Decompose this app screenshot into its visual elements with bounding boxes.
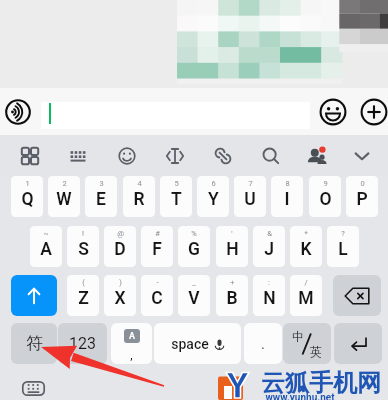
button[interactable]: space <box>154 323 241 364</box>
staticText: : <box>268 278 270 287</box>
button[interactable]: 1 <box>11 176 43 217</box>
staticText: U <box>244 189 256 210</box>
button[interactable]: Emoji <box>313 88 353 135</box>
button[interactable]: 9 <box>309 176 341 217</box>
staticText: E <box>96 189 106 210</box>
button[interactable]: Link <box>201 135 245 176</box>
staticText: L <box>338 239 348 260</box>
button[interactable]: Apps <box>8 135 52 176</box>
staticText: 7 <box>248 179 253 188</box>
staticText: I <box>284 189 290 210</box>
button[interactable]: : <box>253 275 285 316</box>
button[interactable]: ( <box>67 275 99 316</box>
button[interactable]: + <box>216 275 248 316</box>
staticText: Z <box>78 288 89 309</box>
staticText: H <box>226 239 239 260</box>
button[interactable]: Search <box>249 135 293 176</box>
staticText: ) <box>119 278 122 287</box>
button[interactable]: 6 <box>197 176 229 217</box>
staticText: 3 <box>99 179 104 188</box>
button[interactable]: Shift <box>11 275 57 316</box>
button[interactable]: - <box>141 275 173 316</box>
button[interactable]: ) <box>104 275 136 316</box>
button[interactable]: Enter <box>334 323 382 364</box>
button[interactable]: ! <box>67 226 99 267</box>
button[interactable]: Stickers <box>105 135 149 176</box>
staticText: B <box>226 288 238 309</box>
button[interactable]: / <box>290 275 322 316</box>
staticText: % <box>191 229 197 238</box>
button[interactable]: Backspace <box>333 275 381 316</box>
button[interactable]: ' <box>216 226 248 267</box>
staticText: ! <box>82 229 84 238</box>
button[interactable]: 4 <box>123 176 155 217</box>
button[interactable]: _ <box>178 275 210 316</box>
staticText: ? <box>341 229 345 238</box>
staticText: 4 <box>137 179 142 188</box>
staticText: * <box>304 229 308 238</box>
button[interactable]: Chinese English toggle <box>283 323 331 364</box>
button[interactable]: Comma <box>111 323 152 364</box>
button[interactable]: 0 <box>346 176 378 217</box>
staticText: + <box>230 278 235 287</box>
button[interactable]: Keyboard <box>56 135 100 176</box>
staticText: K <box>300 239 312 260</box>
staticText: 符 <box>26 333 43 354</box>
button[interactable]: More functions <box>354 88 388 135</box>
staticText: P <box>356 189 368 210</box>
button[interactable]: ~ <box>30 226 62 267</box>
staticText: 中 <box>292 329 304 344</box>
staticText: space <box>171 336 209 352</box>
button[interactable]: 2 <box>48 176 80 217</box>
staticText: F <box>152 239 162 260</box>
button[interactable]: 7 <box>234 176 266 217</box>
staticText: C <box>151 288 163 309</box>
button[interactable]: & <box>253 226 285 267</box>
staticText: Y <box>208 189 219 210</box>
button[interactable]: Mention contact <box>294 135 338 176</box>
button[interactable]: Period <box>244 323 282 364</box>
staticText: ( <box>82 278 85 287</box>
staticText: / <box>304 278 308 287</box>
staticText: R <box>133 189 145 210</box>
staticText: ' <box>231 229 233 238</box>
staticText: W <box>56 189 72 210</box>
staticText: # <box>155 229 160 238</box>
staticText: G <box>188 239 200 260</box>
staticText: Q <box>21 189 34 210</box>
staticText: V <box>188 288 200 309</box>
staticText: , <box>130 348 133 362</box>
button[interactable]: Text style <box>153 135 197 176</box>
staticText: 123 <box>69 334 96 353</box>
staticText: 1 <box>25 179 30 188</box>
button[interactable]: 3 <box>85 176 117 217</box>
staticText: 0 <box>360 179 365 188</box>
button[interactable] <box>41 102 310 129</box>
button[interactable]: Collapse <box>340 135 384 176</box>
staticText: A <box>129 331 135 342</box>
staticText: @ <box>117 229 124 238</box>
staticText: - <box>156 278 159 287</box>
staticText: 云狐手机网 <box>261 368 381 397</box>
staticText: A <box>40 239 52 260</box>
button[interactable]: ? <box>327 226 359 267</box>
staticText: 5 <box>174 179 179 188</box>
staticText: 9 <box>323 179 328 188</box>
button[interactable]: 5 <box>160 176 192 217</box>
staticText: 英 <box>310 344 322 359</box>
button[interactable]: 123 <box>58 323 107 364</box>
button[interactable]: % <box>178 226 210 267</box>
button[interactable]: @ <box>104 226 136 267</box>
button[interactable]: 符 <box>11 323 57 364</box>
button[interactable]: # <box>141 226 173 267</box>
button[interactable]: 8 <box>271 176 303 217</box>
button[interactable]: Voice input <box>4 88 32 135</box>
button[interactable]: Hide keyboard <box>22 381 45 396</box>
staticText: ~ <box>43 229 49 238</box>
staticText: T <box>171 189 182 210</box>
button[interactable]: * <box>290 226 322 267</box>
staticText: 8 <box>285 179 290 188</box>
staticText: 2 <box>62 179 67 188</box>
staticText: . <box>261 335 265 353</box>
staticText: X <box>114 288 126 309</box>
